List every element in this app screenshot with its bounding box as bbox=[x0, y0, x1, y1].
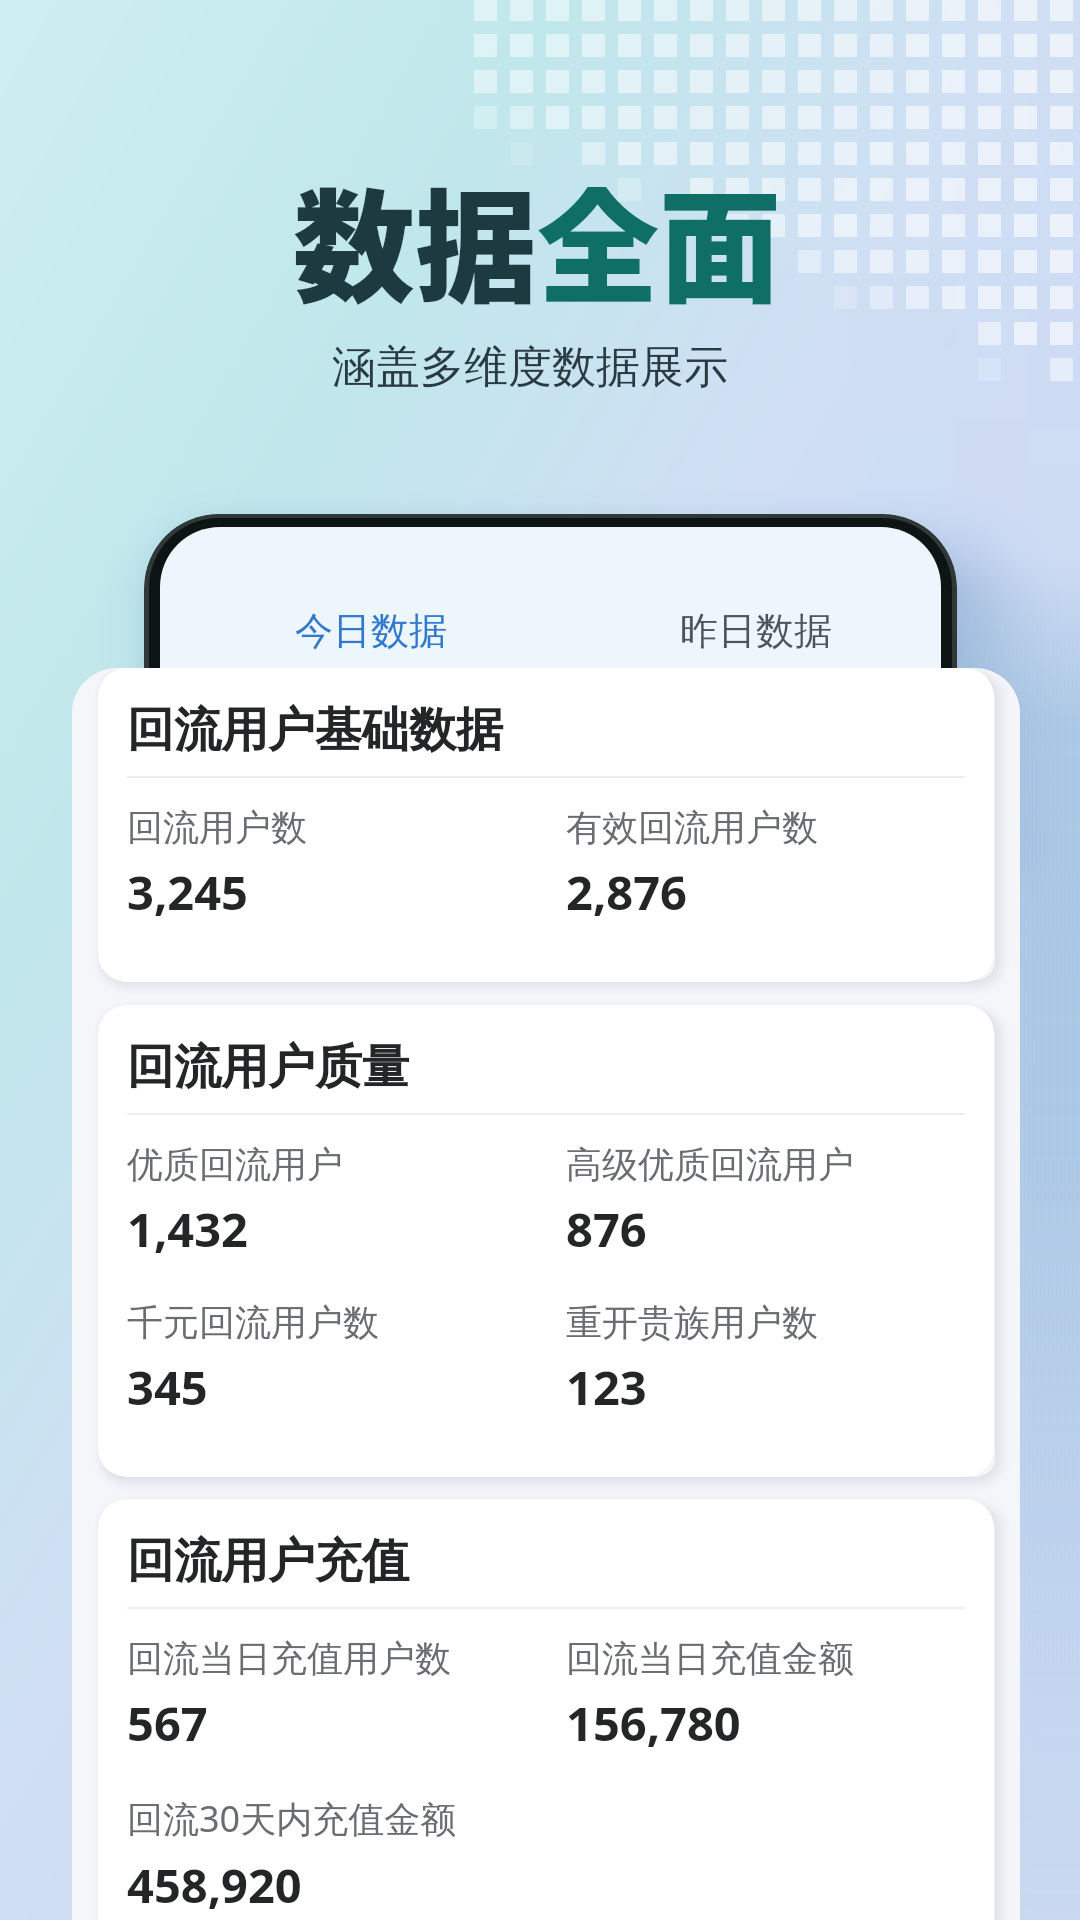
staticText: 回流用户基础数据 bbox=[127, 701, 503, 760]
staticText: 876 bbox=[566, 1197, 647, 1261]
staticText: 涵盖多维度数据展示 bbox=[332, 340, 728, 395]
staticText: 数据全面 bbox=[293, 150, 781, 327]
staticText: 回流当日充值金额 bbox=[566, 1636, 854, 1681]
staticText: 优质回流用户 bbox=[127, 1142, 343, 1187]
staticText: 高级优质回流用户 bbox=[566, 1142, 854, 1187]
staticText: 156,780 bbox=[566, 1691, 741, 1755]
staticText: 567 bbox=[127, 1691, 208, 1755]
button[interactable]: 昨日数据 bbox=[550, 588, 941, 674]
staticText: 3,245 bbox=[127, 860, 248, 924]
staticText: 345 bbox=[127, 1355, 208, 1419]
staticText: 回流用户充值 bbox=[127, 1532, 409, 1591]
staticText: 回流用户质量 bbox=[127, 1038, 409, 1097]
button[interactable]: 回流用户质量 bbox=[98, 1005, 994, 1477]
staticText: 1,432 bbox=[127, 1197, 248, 1261]
staticText: 今日数据 bbox=[295, 607, 447, 655]
staticText: 重开贵族用户数 bbox=[566, 1300, 818, 1345]
staticText: 458,920 bbox=[127, 1853, 302, 1917]
staticText: 有效回流用户数 bbox=[566, 805, 818, 850]
staticText: 123 bbox=[566, 1355, 647, 1419]
button[interactable]: 回流用户充值 bbox=[98, 1499, 994, 1920]
button[interactable]: 回流用户基础数据 bbox=[98, 668, 994, 982]
staticText: 2,876 bbox=[566, 860, 687, 924]
staticText: 千元回流用户数 bbox=[127, 1300, 379, 1345]
staticText: 昨日数据 bbox=[680, 607, 832, 655]
staticText: 回流30天内充值金额 bbox=[127, 1794, 457, 1843]
button[interactable]: 今日数据 bbox=[160, 588, 550, 674]
staticText: 回流用户数 bbox=[127, 805, 307, 850]
staticText: 回流当日充值用户数 bbox=[127, 1636, 451, 1681]
